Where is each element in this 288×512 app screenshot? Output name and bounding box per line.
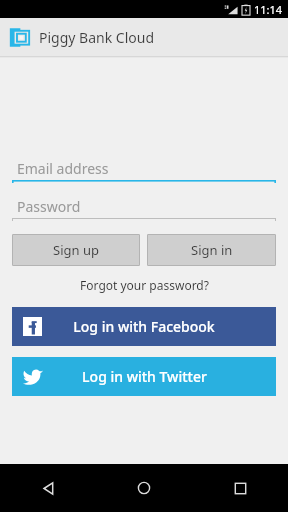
button[interactable]: Sign in xyxy=(147,234,276,266)
button[interactable]: Home xyxy=(96,464,192,512)
button[interactable]: Email address xyxy=(12,156,276,183)
staticText: Sign in xyxy=(191,241,233,259)
button[interactable]: Back xyxy=(0,464,96,512)
button[interactable]: Password xyxy=(12,194,276,221)
staticText: Password xyxy=(17,197,81,216)
other: Twitter xyxy=(23,368,43,385)
other: Facebook xyxy=(23,317,42,336)
button[interactable]: Recent apps xyxy=(192,464,288,512)
staticText: Email address xyxy=(17,159,109,178)
staticText: Forgot your password? xyxy=(80,277,209,293)
staticText: Log in with Facebook xyxy=(73,317,215,336)
staticText: Sign up xyxy=(53,241,99,259)
staticText: Piggy Bank Cloud xyxy=(39,28,154,47)
staticText: 11:14 xyxy=(254,2,283,17)
button[interactable]: Twitter xyxy=(12,357,276,396)
button[interactable]: Forgot your password? xyxy=(0,274,288,296)
button[interactable]: Facebook xyxy=(12,307,276,346)
staticText: Log in with Twitter xyxy=(82,367,207,386)
button[interactable]: Sign up xyxy=(12,234,140,266)
